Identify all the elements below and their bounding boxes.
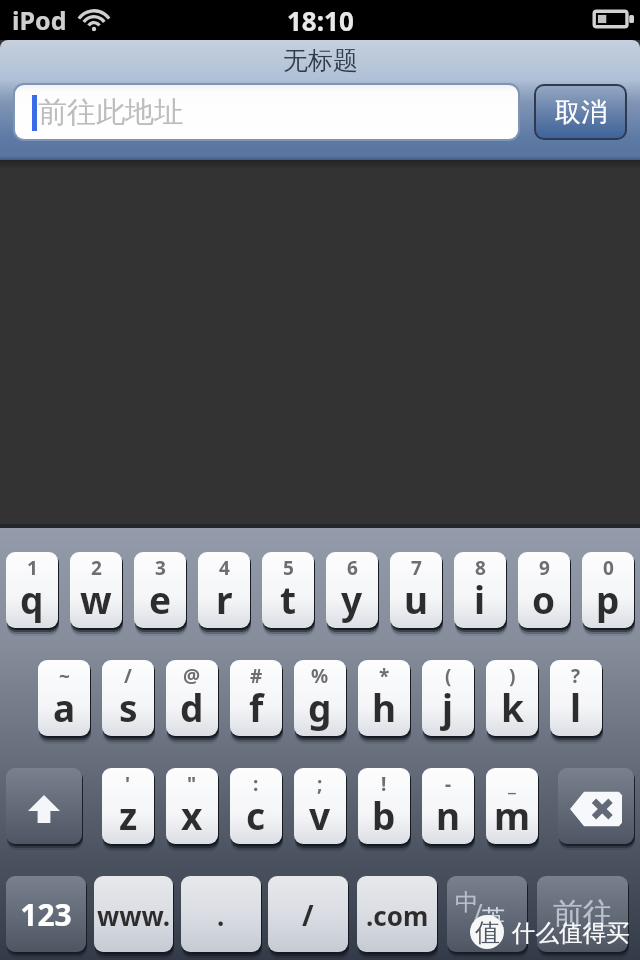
staticText: m xyxy=(494,790,531,840)
staticText: w xyxy=(80,574,112,624)
staticText: n xyxy=(436,790,461,840)
button[interactable]: 6 xyxy=(326,552,378,628)
button[interactable]: ! xyxy=(358,768,410,844)
staticText: _ xyxy=(508,771,516,797)
button[interactable]: ( xyxy=(422,660,474,736)
button[interactable]: / xyxy=(102,660,154,736)
staticText: c xyxy=(246,790,266,840)
staticText: 0 xyxy=(603,555,614,581)
staticText: / xyxy=(124,663,132,689)
staticText: ~ xyxy=(59,663,70,689)
button[interactable]: / xyxy=(268,876,348,952)
staticText: 6 xyxy=(347,555,358,581)
staticText: k xyxy=(501,682,524,732)
staticText: ? xyxy=(571,663,581,689)
staticText: 4 xyxy=(219,555,230,581)
button[interactable]: 123 xyxy=(6,876,86,952)
staticText: f xyxy=(249,682,264,732)
staticText: p xyxy=(596,574,620,624)
staticText: 中 xyxy=(455,888,478,917)
button[interactable]: 4 xyxy=(198,552,250,628)
button[interactable]: 中/英 xyxy=(447,876,527,952)
staticText: b xyxy=(372,790,396,840)
staticText: / xyxy=(302,896,314,934)
button[interactable]: 5 xyxy=(262,552,314,628)
staticText: 5 xyxy=(283,555,294,581)
staticText: : xyxy=(253,771,259,797)
staticText: y xyxy=(341,574,363,624)
staticText: o xyxy=(532,574,556,624)
staticText: 123 xyxy=(20,894,72,935)
button[interactable]: ? xyxy=(550,660,602,736)
staticText: 2 xyxy=(91,555,102,581)
staticText: 3 xyxy=(155,555,166,581)
staticText: ! xyxy=(381,771,387,797)
button[interactable]: # xyxy=(230,660,282,736)
staticText: @ xyxy=(183,663,201,689)
staticText: " xyxy=(187,771,197,797)
staticText: i xyxy=(474,574,486,624)
staticText: s xyxy=(119,682,138,732)
button[interactable]: 前往 xyxy=(537,876,628,952)
button[interactable]: www. xyxy=(94,876,173,952)
button[interactable]: * xyxy=(358,660,410,736)
staticText: - xyxy=(445,771,452,797)
button[interactable]: 取消 xyxy=(536,86,625,138)
staticText: ' xyxy=(125,771,131,797)
staticText: www. xyxy=(97,898,171,933)
staticText: * xyxy=(379,663,390,689)
button[interactable]: 2 xyxy=(70,552,122,628)
button[interactable]: Delete xyxy=(558,768,634,844)
staticText: u xyxy=(404,574,429,624)
staticText: e xyxy=(149,574,172,624)
staticText: / xyxy=(474,896,483,927)
button[interactable]: _ xyxy=(486,768,538,844)
staticText: 英 xyxy=(482,904,505,933)
staticText: 7 xyxy=(411,555,422,581)
staticText: 1 xyxy=(27,555,38,581)
button[interactable]: 3 xyxy=(134,552,186,628)
staticText: 9 xyxy=(539,555,550,581)
staticText: 值 xyxy=(475,917,500,948)
staticText: 8 xyxy=(475,555,486,581)
staticText: .com xyxy=(366,898,429,933)
staticText: iPod xyxy=(12,3,67,37)
staticText: 18:10 xyxy=(287,3,354,38)
button[interactable]: " xyxy=(166,768,218,844)
staticText: r xyxy=(216,574,233,624)
button[interactable]: : xyxy=(230,768,282,844)
button[interactable]: - xyxy=(422,768,474,844)
button[interactable]: . xyxy=(181,876,261,952)
button[interactable]: 0 xyxy=(582,552,634,628)
button[interactable]: ~ xyxy=(38,660,90,736)
staticText: % xyxy=(311,663,329,689)
button[interactable]: ) xyxy=(486,660,538,736)
button[interactable]: 7 xyxy=(390,552,442,628)
staticText: ; xyxy=(317,771,323,797)
button[interactable]: Shift xyxy=(6,768,82,844)
button[interactable]: ' xyxy=(102,768,154,844)
staticText: 取消 xyxy=(555,96,607,129)
staticText: . xyxy=(217,898,225,933)
staticText: ( xyxy=(445,663,452,689)
staticText: q xyxy=(20,574,44,624)
staticText: z xyxy=(119,790,138,840)
staticText: h xyxy=(372,682,397,732)
button[interactable]: .com xyxy=(357,876,437,952)
staticText: d xyxy=(180,682,204,732)
staticText: 前往此地址 xyxy=(38,94,183,131)
button[interactable]: 9 xyxy=(518,552,570,628)
button[interactable]: @ xyxy=(166,660,218,736)
button[interactable]: 1 xyxy=(6,552,58,628)
staticText: ) xyxy=(509,663,516,689)
button[interactable]: % xyxy=(294,660,346,736)
staticText: 无标题 xyxy=(283,45,358,76)
button[interactable]: 前往此地址 xyxy=(15,85,518,139)
staticText: a xyxy=(53,682,76,732)
button[interactable]: ; xyxy=(294,768,346,844)
staticText: g xyxy=(308,682,332,732)
staticText: t xyxy=(280,574,297,624)
staticText: # xyxy=(250,663,263,689)
staticText: 前往 xyxy=(553,895,613,933)
button[interactable]: 8 xyxy=(454,552,506,628)
